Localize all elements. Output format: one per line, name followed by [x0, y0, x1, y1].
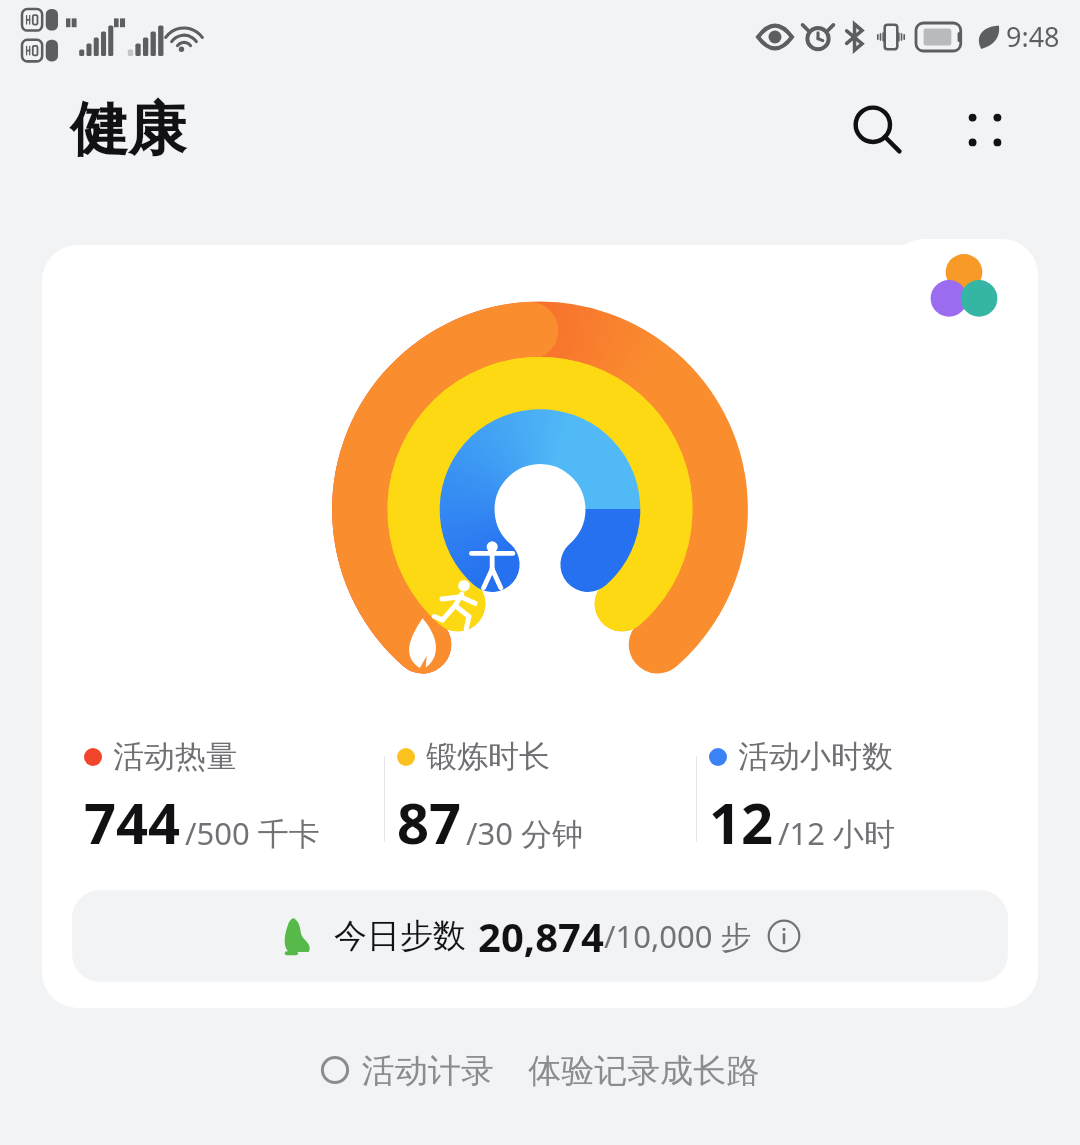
- staticText: 20,874: [478, 909, 604, 963]
- button[interactable]: 活动小时数: [697, 737, 1008, 860]
- staticText: 今日步数: [334, 915, 466, 957]
- button[interactable]: Search: [834, 87, 920, 173]
- button[interactable]: 活动计录 体验记录成长路: [320, 1047, 760, 1092]
- button[interactable]: 今日步数: [72, 890, 1008, 982]
- button[interactable]: More options: [942, 87, 1028, 173]
- staticText: 活动计录 体验记录成长路: [362, 1047, 760, 1092]
- staticText: 744: [84, 784, 181, 860]
- staticText: /30 分钟: [466, 812, 584, 854]
- button[interactable]: 活动热量: [72, 737, 384, 860]
- staticText: 锻炼时长: [426, 737, 550, 776]
- button[interactable]: Activity rings: [42, 245, 1038, 1008]
- staticText: 活动小时数: [738, 737, 893, 776]
- staticText: 活动热量: [113, 737, 237, 776]
- staticText: /500 千卡: [185, 812, 320, 854]
- staticText: 健康: [70, 93, 186, 166]
- staticText: 9:48: [1006, 18, 1060, 55]
- button[interactable]: Activity rings detail: [890, 239, 1038, 335]
- staticText: /12 小时: [778, 812, 896, 854]
- button[interactable]: 锻炼时长: [385, 737, 696, 860]
- staticText: /10,000 步: [604, 915, 752, 957]
- button[interactable]: Activity rings: [305, 271, 775, 721]
- staticText: 12: [709, 784, 774, 860]
- other: Steps info: [764, 916, 804, 956]
- staticText: 87: [397, 784, 462, 860]
